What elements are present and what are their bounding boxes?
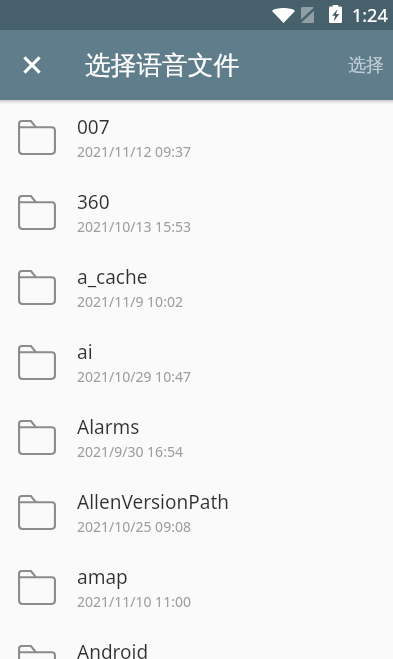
- staticText: 1:24: [352, 3, 388, 28]
- button[interactable]: 007: [0, 100, 393, 175]
- staticText: 2021/11/10 11:00: [77, 592, 191, 611]
- button[interactable]: Android: [0, 625, 393, 659]
- button[interactable]: ai: [0, 325, 393, 400]
- staticText: 2021/10/29 10:47: [77, 367, 191, 386]
- staticText: amap: [77, 564, 128, 590]
- button[interactable]: Alarms: [0, 400, 393, 475]
- staticText: Android: [77, 639, 149, 659]
- staticText: AllenVersionPath: [77, 489, 229, 515]
- button[interactable]: 360: [0, 175, 393, 250]
- staticText: 选择语音文件: [85, 49, 240, 81]
- staticText: 2021/9/30 16:54: [77, 442, 183, 461]
- button[interactable]: Close: [0, 30, 64, 100]
- button[interactable]: 选择: [337, 30, 393, 100]
- button[interactable]: a_cache: [0, 250, 393, 325]
- staticText: 选择: [348, 54, 384, 77]
- button[interactable]: amap: [0, 550, 393, 625]
- staticText: ai: [77, 339, 93, 365]
- staticText: 2021/11/12 09:37: [77, 142, 191, 161]
- staticText: a_cache: [77, 264, 148, 290]
- staticText: 360: [77, 189, 110, 215]
- staticText: 2021/10/25 09:08: [77, 517, 191, 536]
- staticText: 2021/11/9 10:02: [77, 292, 183, 311]
- button[interactable]: AllenVersionPath: [0, 475, 393, 550]
- staticText: Alarms: [77, 414, 140, 440]
- staticText: 2021/10/13 15:53: [77, 217, 191, 236]
- staticText: 007: [77, 114, 110, 140]
